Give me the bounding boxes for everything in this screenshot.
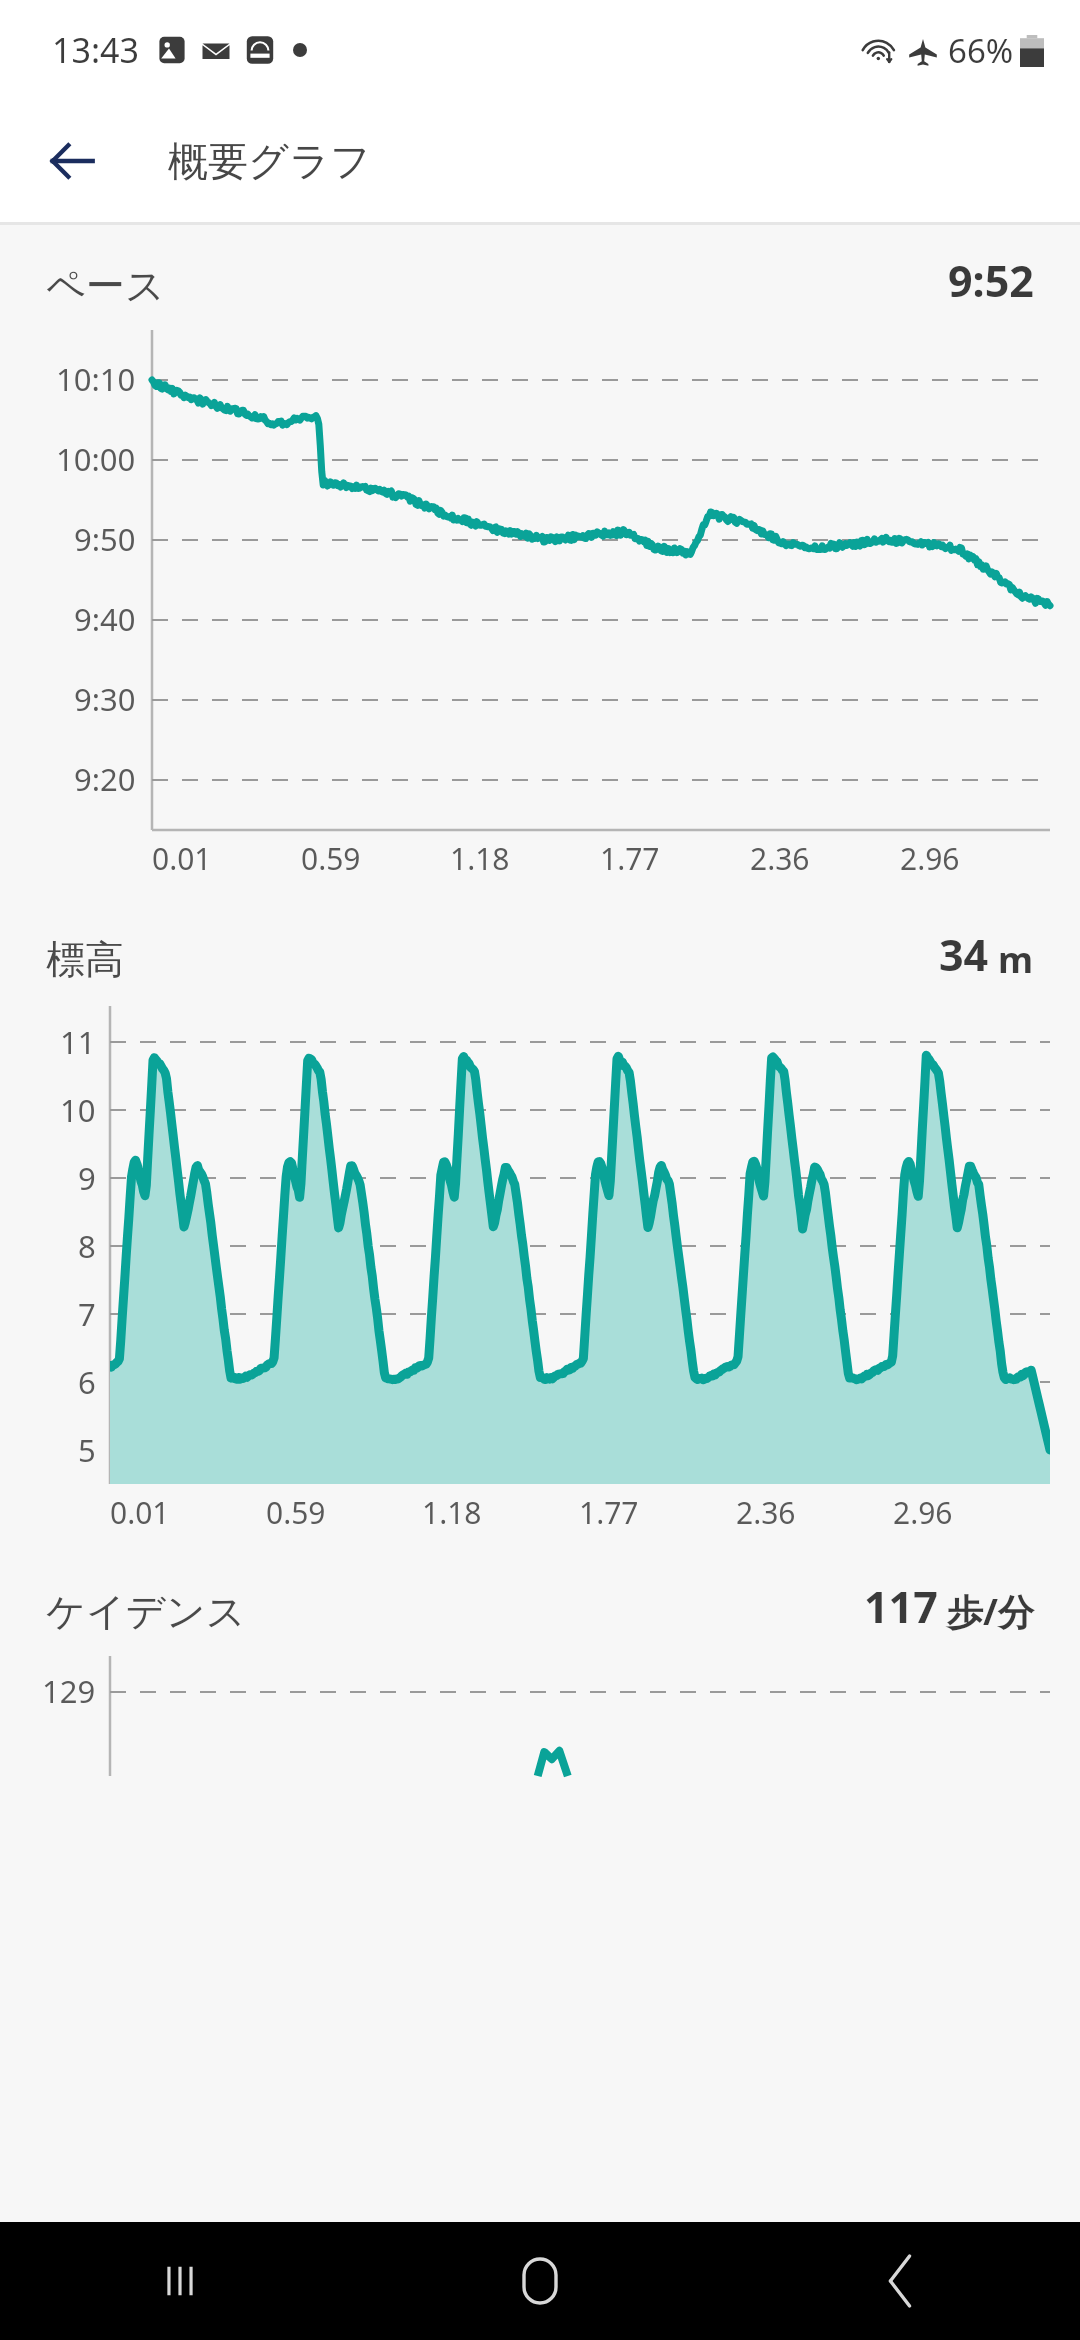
staticText: 9:50 xyxy=(74,518,136,560)
staticText: 13:43 xyxy=(52,27,139,73)
staticText: m xyxy=(998,935,1034,984)
staticText: 2.36 xyxy=(736,1492,796,1533)
staticText: 117 xyxy=(864,1577,938,1636)
staticText: 9:20 xyxy=(74,758,136,800)
staticText: 2.36 xyxy=(750,838,810,879)
staticText: 標高 xyxy=(46,935,124,984)
staticText: 2.96 xyxy=(900,838,960,879)
staticText: 66% xyxy=(948,28,1014,73)
staticText: 10:00 xyxy=(56,438,136,480)
staticText: ケイデンス xyxy=(46,1587,246,1636)
staticText: 0.01 xyxy=(110,1492,170,1533)
staticText: 5 xyxy=(78,1429,96,1471)
staticText: 11 xyxy=(60,1021,96,1063)
staticText: 9:30 xyxy=(74,678,136,720)
staticText: 1.18 xyxy=(450,838,510,879)
staticText: 1.77 xyxy=(579,1492,639,1533)
staticText: 1.77 xyxy=(600,838,660,879)
staticText: 10 xyxy=(60,1089,96,1131)
staticText: 9:40 xyxy=(74,598,136,640)
staticText: 0.59 xyxy=(266,1492,326,1533)
button[interactable]: Back xyxy=(34,123,110,199)
staticText: 8 xyxy=(78,1225,96,1267)
staticText: 9 xyxy=(78,1157,96,1199)
button[interactable]: Recent apps xyxy=(0,2222,360,2340)
staticText: 6 xyxy=(78,1361,96,1403)
staticText: 129 xyxy=(42,1670,96,1712)
staticText: 歩/分 xyxy=(947,1587,1034,1636)
staticText: 1.18 xyxy=(422,1492,482,1533)
staticText: 0.01 xyxy=(152,838,212,879)
staticText: 2.96 xyxy=(893,1492,953,1533)
staticText: 9:52 xyxy=(948,251,1034,310)
button[interactable]: Back xyxy=(720,2222,1080,2340)
staticText: 10:10 xyxy=(56,358,136,400)
staticText: 概要グラフ xyxy=(168,136,371,186)
staticText: 7 xyxy=(78,1293,96,1335)
staticText: ペース xyxy=(46,261,165,310)
staticText: 34 xyxy=(939,925,989,984)
button[interactable]: Home xyxy=(360,2222,720,2340)
staticText: 0.59 xyxy=(301,838,361,879)
